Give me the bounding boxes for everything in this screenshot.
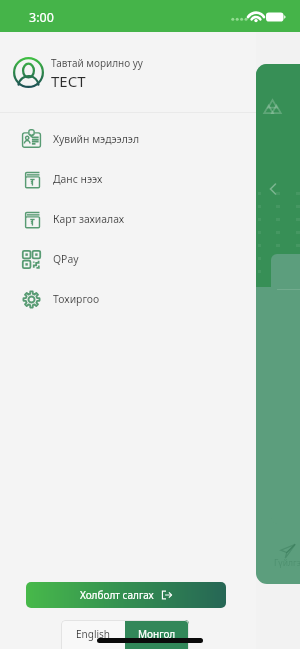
button[interactable]: English: [61, 620, 125, 649]
staticText: 3:00: [29, 9, 54, 26]
button[interactable]: Данс нээх: [0, 159, 255, 199]
staticText: Тавтай морилно уу: [51, 56, 143, 70]
button[interactable]: Тохиргоо: [0, 279, 255, 319]
staticText: Хувийн мэдээлэл: [53, 132, 140, 146]
staticText: Монгол: [138, 627, 176, 641]
button[interactable]: Холболт салгах: [26, 582, 226, 608]
staticText: Тохиргоо: [53, 292, 100, 306]
staticText: English: [76, 627, 111, 641]
button[interactable]: Монгол: [125, 620, 189, 649]
button[interactable]: Хувийн мэдээлэл: [0, 119, 255, 159]
staticText: Карт захиалах: [53, 212, 125, 226]
staticText: Гүйлгээ: [274, 557, 300, 569]
button[interactable]: QPay: [0, 239, 255, 279]
button[interactable]: Карт захиалах: [0, 199, 255, 239]
staticText: QPay: [53, 252, 79, 266]
staticText: Данс нээх: [53, 172, 103, 186]
staticText: ТЕСТ: [51, 71, 86, 91]
staticText: Холболт салгах: [80, 588, 154, 602]
